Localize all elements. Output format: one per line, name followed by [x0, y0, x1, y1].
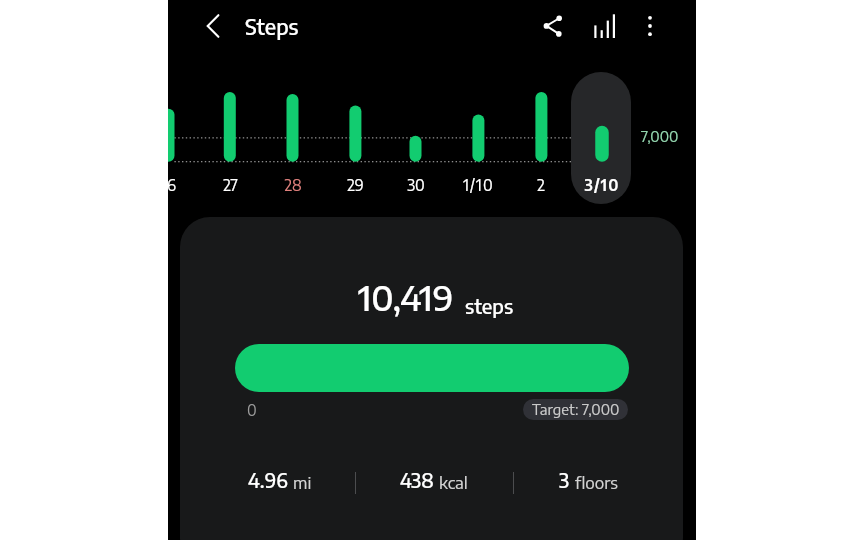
staticText: steps: [465, 293, 514, 318]
staticText: 6: [168, 175, 176, 194]
staticText: Target: 7,000: [532, 400, 620, 419]
staticText: 7,000: [641, 127, 679, 146]
staticText: Steps: [245, 13, 299, 40]
staticText: 30: [407, 175, 425, 194]
button[interactable]: 438: [374, 465, 494, 495]
staticText: kcal: [439, 471, 468, 492]
staticText: 4.96: [248, 468, 288, 492]
staticText: 3: [559, 468, 570, 492]
staticText: 10,419: [358, 275, 454, 319]
staticText: 28: [284, 175, 302, 194]
button[interactable]: Navigate up: [192, 5, 233, 46]
button[interactable]: 3: [529, 465, 649, 495]
staticText: 0: [247, 400, 257, 419]
staticText: 27: [223, 175, 238, 194]
staticText: 29: [347, 175, 364, 194]
button[interactable]: Share: [532, 5, 573, 46]
staticText: 1/10: [463, 175, 494, 194]
button[interactable]: View history chart: [582, 5, 623, 46]
staticText: floors: [575, 471, 619, 492]
button[interactable]: [571, 72, 631, 204]
staticText: 438: [400, 468, 434, 492]
button[interactable]: 4.96: [220, 465, 340, 495]
staticText: 3/10: [584, 175, 620, 194]
staticText: mi: [293, 471, 312, 492]
button[interactable]: More options: [629, 5, 670, 46]
staticText: 2: [537, 175, 545, 194]
